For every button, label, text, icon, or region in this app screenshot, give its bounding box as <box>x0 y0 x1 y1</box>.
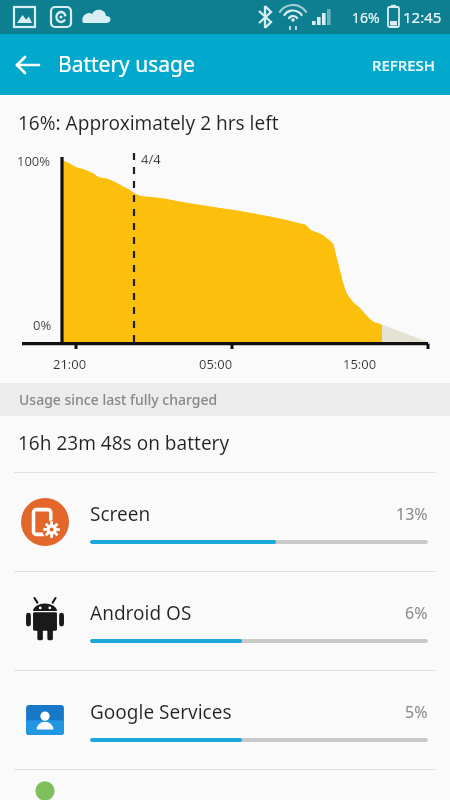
button[interactable]: Android OS <box>0 572 450 670</box>
button[interactable]: Screen <box>0 473 450 571</box>
staticText: 05:00 <box>199 355 233 373</box>
staticText: 16h 23m 48s on battery <box>18 430 230 456</box>
button[interactable]: REFRESH <box>358 34 450 95</box>
staticText: 15:00 <box>343 355 377 373</box>
staticText: Android OS <box>90 600 405 626</box>
staticText: 16%: Approximately 2 hrs left <box>18 110 279 136</box>
staticText: 21:00 <box>53 355 87 373</box>
button[interactable] <box>0 776 450 800</box>
staticText: 4/4 <box>141 150 161 168</box>
staticText: 100% <box>17 152 51 170</box>
staticText: 0% <box>33 316 52 334</box>
staticText: 6% <box>405 602 428 624</box>
staticText: Screen <box>90 501 396 527</box>
staticText: 16% <box>352 8 380 27</box>
staticText: 13% <box>396 503 428 525</box>
staticText: 5% <box>405 701 428 723</box>
staticText: Usage since last fully charged <box>19 390 218 409</box>
staticText: REFRESH <box>372 55 436 75</box>
button[interactable]: Google Services <box>0 671 450 769</box>
button[interactable]: Back <box>6 43 50 87</box>
staticText: Battery usage <box>58 50 195 79</box>
staticText: Google Services <box>90 699 405 725</box>
staticText: 12:45 <box>403 7 442 27</box>
